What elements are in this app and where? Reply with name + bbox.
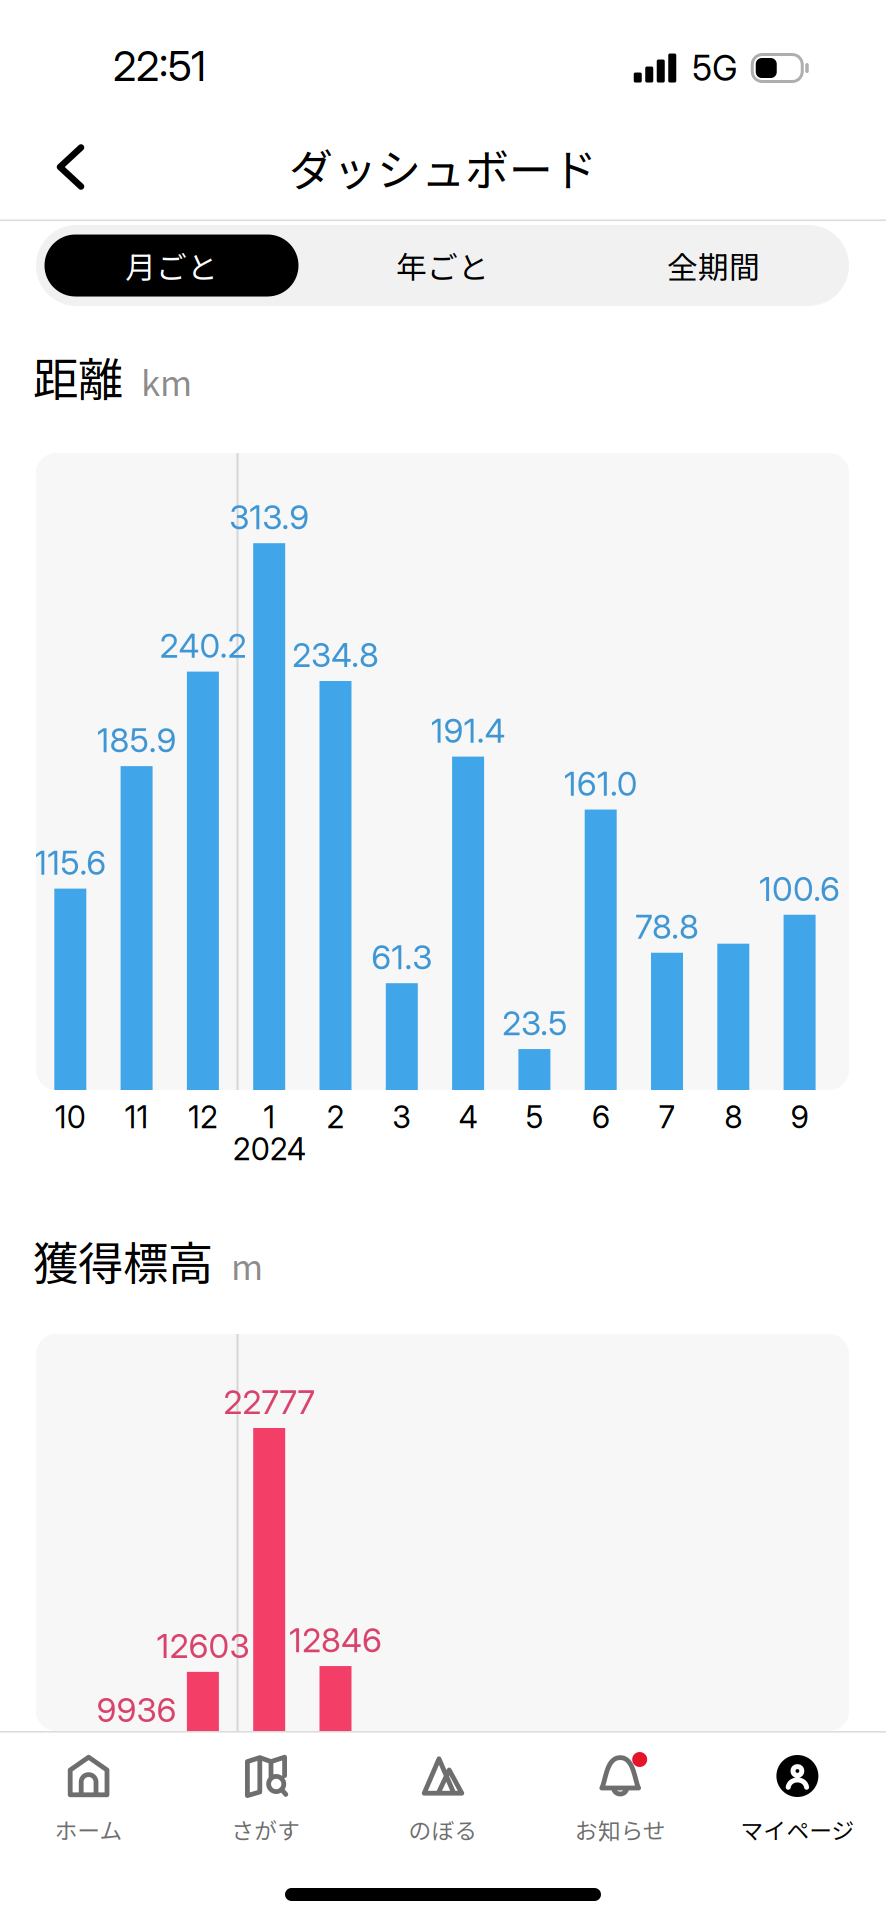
staticText: 7: [658, 1098, 675, 1135]
staticText: 191.4: [431, 710, 506, 751]
staticText: 年ごと: [396, 243, 489, 288]
button[interactable]: 年ごと: [307, 225, 578, 306]
staticText: 3: [392, 1098, 411, 1135]
staticText: 161.0: [564, 763, 638, 804]
staticText: 6: [592, 1098, 610, 1135]
staticText: 月ごと: [125, 243, 218, 288]
staticText: 78.8: [635, 907, 699, 947]
staticText: 2024: [233, 1130, 306, 1167]
button[interactable]: のぼる: [354, 1731, 532, 1851]
staticText: 距離: [33, 343, 123, 409]
staticText: 獲得標高: [33, 1227, 213, 1293]
staticText: 5G: [692, 47, 738, 89]
staticText: 22:51: [113, 41, 206, 91]
staticText: 12846: [289, 1620, 382, 1660]
staticText: 9936: [97, 1690, 177, 1730]
staticText: 12: [188, 1098, 218, 1135]
staticText: 61.3: [371, 937, 432, 977]
staticText: マイページ: [740, 1813, 854, 1846]
staticText: ダッシュボード: [289, 135, 597, 199]
staticText: 115.6: [34, 842, 106, 883]
button[interactable]: 全期間: [578, 225, 849, 306]
staticText: のぼる: [408, 1813, 477, 1846]
button[interactable]: さがす: [177, 1731, 354, 1851]
staticText: km: [141, 356, 192, 406]
staticText: 100.6: [759, 869, 840, 909]
button[interactable]: 月ごと: [36, 225, 307, 306]
staticText: 11: [125, 1098, 149, 1135]
staticText: さがす: [231, 1813, 300, 1846]
staticText: ホーム: [55, 1813, 123, 1846]
staticText: 240.2: [159, 625, 246, 666]
staticText: m: [231, 1240, 263, 1290]
button[interactable]: マイページ: [709, 1731, 886, 1851]
staticText: 8: [724, 1098, 742, 1135]
button[interactable]: お知らせ: [532, 1731, 709, 1851]
staticText: 1: [263, 1098, 275, 1135]
staticText: 22777: [223, 1382, 315, 1422]
staticText: 10: [55, 1098, 86, 1135]
staticText: 4: [459, 1098, 478, 1135]
staticText: 全期間: [667, 243, 760, 288]
staticText: 185.9: [97, 720, 177, 760]
staticText: 5: [525, 1098, 543, 1135]
staticText: お知らせ: [575, 1813, 666, 1846]
staticText: 12603: [156, 1626, 249, 1666]
staticText: 234.8: [292, 635, 379, 675]
button[interactable]: ホーム: [0, 1731, 177, 1851]
staticText: 2: [326, 1098, 344, 1135]
button[interactable]: Back: [27, 121, 114, 212]
staticText: 23.5: [502, 1003, 567, 1043]
staticText: 313.9: [229, 497, 309, 537]
staticText: 9: [791, 1098, 809, 1135]
